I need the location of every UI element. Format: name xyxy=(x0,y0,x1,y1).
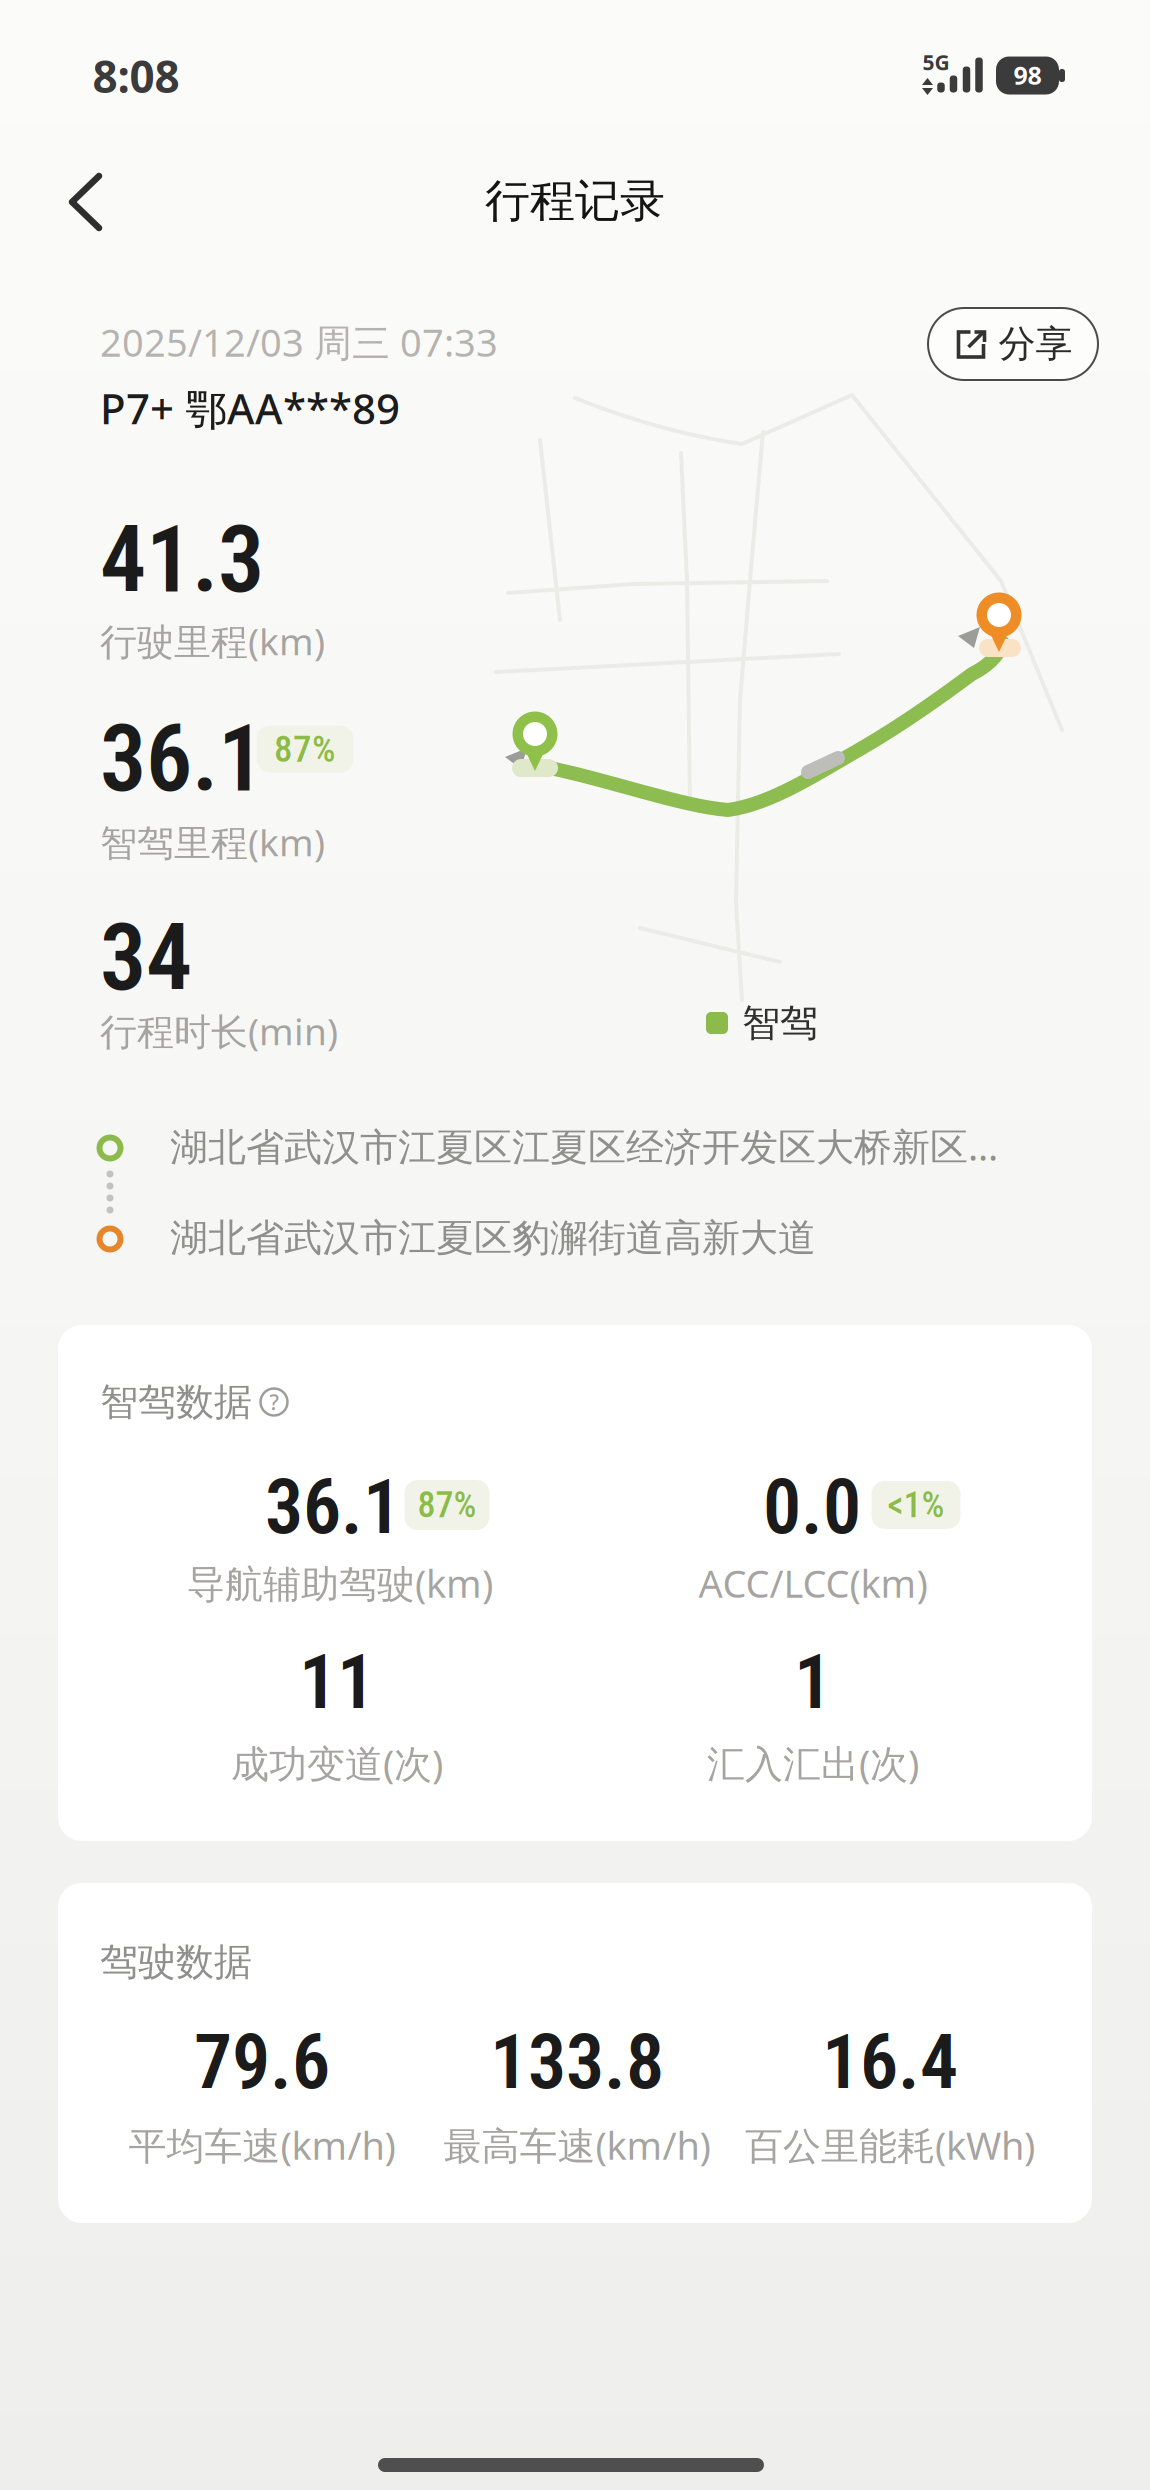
staticText: 行程时长(min) xyxy=(100,1006,338,1056)
staticText: 0.0 xyxy=(763,1462,861,1552)
staticText: 最高车速(km/h) xyxy=(443,2119,710,2171)
staticText: 36.1 xyxy=(100,705,264,813)
staticText: 87% xyxy=(274,727,336,771)
staticText: 导航辅助驾驶(km) xyxy=(187,1557,493,1609)
staticText: 98 xyxy=(1013,58,1041,92)
staticText: 36.1 xyxy=(265,1462,401,1552)
staticText: 成功变道(次) xyxy=(231,1737,443,1789)
staticText: 41.3 xyxy=(100,506,264,614)
button[interactable]: 分享 xyxy=(928,308,1098,380)
staticText: P7+ 鄂AA***89 xyxy=(100,379,400,437)
button[interactable]: Help xyxy=(257,1385,291,1419)
staticText: 百公里能耗(kWh) xyxy=(745,2119,1035,2171)
staticText: 2025/12/03 周三 07:33 xyxy=(100,316,498,368)
button[interactable]: Back xyxy=(66,171,106,233)
staticText: 驾驶数据 xyxy=(100,1938,252,1986)
staticText: 133.8 xyxy=(490,2017,664,2107)
staticText: 智驾数据 xyxy=(100,1378,252,1426)
staticText: ? xyxy=(269,1388,278,1416)
staticText: ACC/LCC(km) xyxy=(698,1557,927,1609)
staticText: 16.4 xyxy=(822,2017,958,2107)
staticText: 智驾里程(km) xyxy=(100,817,325,867)
staticText: 79.6 xyxy=(194,2017,330,2107)
staticText: 行程记录 xyxy=(485,173,665,229)
staticText: 湖北省武汉市江夏区豹澥街道高新大道 xyxy=(170,1214,816,1262)
staticText: 智驾 xyxy=(742,999,818,1047)
staticText: 34 xyxy=(100,904,192,1012)
staticText: 分享 xyxy=(998,321,1072,367)
staticText: 87% xyxy=(417,1484,476,1526)
staticText: 湖北省武汉市江夏区江夏区经济开发区大桥新区... xyxy=(170,1120,998,1172)
staticText: 5G xyxy=(922,48,949,76)
staticText: 平均车速(km/h) xyxy=(128,2119,395,2171)
staticText: 8:08 xyxy=(92,46,179,106)
staticText: 行驶里程(km) xyxy=(100,616,325,666)
staticText: 汇入汇出(次) xyxy=(707,1737,919,1789)
staticText: 11 xyxy=(299,1637,375,1727)
staticText: 1 xyxy=(794,1637,832,1727)
staticText: <1% xyxy=(887,1484,944,1526)
